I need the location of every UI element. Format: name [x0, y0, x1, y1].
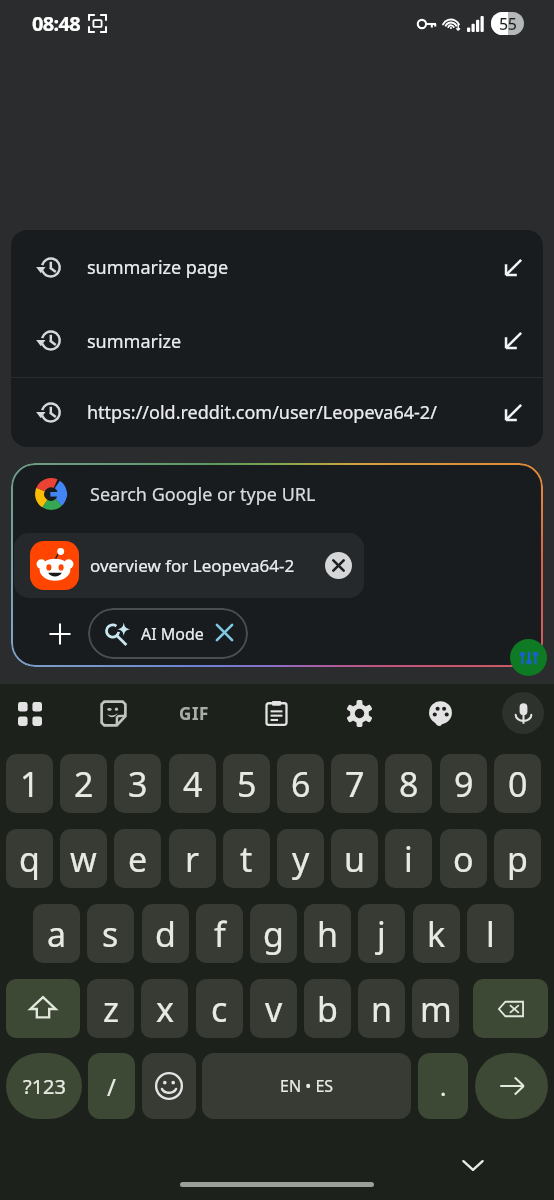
button[interactable]: ?123 — [6, 1053, 82, 1119]
staticText: z — [103, 986, 119, 1032]
button[interactable]: 2 — [60, 754, 107, 813]
button[interactable]: o — [440, 829, 487, 888]
button[interactable]: Hide keyboard — [456, 1148, 490, 1182]
button[interactable]: summarize page — [11, 230, 543, 305]
button[interactable]: c — [196, 979, 243, 1038]
staticText: 6 — [291, 761, 311, 807]
staticText: Search Google or type URL — [90, 482, 316, 507]
staticText: 0 — [508, 761, 528, 807]
staticText: j — [377, 911, 386, 957]
staticText: / — [107, 1070, 116, 1103]
button[interactable]: y — [277, 829, 324, 888]
staticText: f — [214, 911, 226, 957]
button[interactable]: v — [250, 979, 297, 1038]
button[interactable]: f — [196, 904, 243, 963]
staticText: 9 — [454, 761, 474, 807]
button[interactable]: z — [87, 979, 134, 1038]
button[interactable]: / — [88, 1053, 135, 1119]
button[interactable]: Search Google or type URL — [11, 463, 543, 525]
button[interactable]: GIF — [172, 692, 216, 734]
button[interactable]: n — [358, 979, 405, 1038]
button[interactable]: s — [87, 904, 134, 963]
button[interactable]: Emoji — [142, 1053, 196, 1119]
button[interactable]: j — [358, 904, 405, 963]
button[interactable]: 5 — [223, 754, 270, 813]
button[interactable]: 7 — [331, 754, 378, 813]
staticText: b — [317, 986, 338, 1032]
staticText: d — [155, 911, 176, 957]
button[interactable]: g — [250, 904, 297, 963]
button[interactable]: 9 — [440, 754, 487, 813]
staticText: x — [156, 986, 174, 1032]
staticText: r — [185, 836, 200, 882]
button[interactable]: Enter — [475, 1053, 548, 1119]
staticText: a — [47, 911, 67, 957]
button[interactable]: 0 — [494, 754, 541, 813]
button[interactable]: x — [141, 979, 188, 1038]
staticText: n — [371, 986, 393, 1032]
staticText: v — [265, 986, 283, 1032]
staticText: GIF — [179, 702, 210, 725]
staticText: m — [420, 986, 452, 1032]
button[interactable]: overview for Leopeva64-2 — [14, 533, 364, 598]
button[interactable]: i — [385, 829, 432, 888]
staticText: e — [128, 836, 148, 882]
button[interactable]: 3 — [114, 754, 161, 813]
other: Insert suggestion — [501, 401, 525, 425]
button[interactable]: Clipboard — [255, 692, 298, 735]
button[interactable]: summarize — [11, 305, 543, 377]
button[interactable]: b — [304, 979, 351, 1038]
button[interactable]: Tune — [510, 639, 547, 676]
button[interactable]: m — [412, 979, 459, 1038]
button[interactable]: Remove — [325, 552, 352, 579]
button[interactable]: t — [223, 829, 270, 888]
button[interactable]: k — [413, 904, 460, 963]
staticText: 2 — [74, 761, 94, 807]
staticText: 7 — [345, 761, 365, 807]
staticText: summarize page — [87, 255, 493, 280]
button[interactable]: 6 — [277, 754, 324, 813]
button[interactable]: 8 — [385, 754, 432, 813]
button[interactable]: Add — [41, 615, 79, 653]
button[interactable]: https://old.reddit.com/user/Leopeva64-2/ — [11, 378, 543, 447]
button[interactable]: d — [142, 904, 189, 963]
button[interactable]: 4 — [169, 754, 216, 813]
button[interactable]: Voice input — [502, 692, 544, 734]
button[interactable]: l — [467, 904, 514, 963]
staticText: w — [70, 836, 97, 882]
staticText: summarize — [87, 329, 493, 354]
button[interactable]: p — [494, 829, 541, 888]
button[interactable]: u — [331, 829, 378, 888]
button[interactable]: Shift — [6, 979, 80, 1038]
staticText: overview for Leopeva64-2 — [90, 554, 295, 577]
staticText: 8 — [399, 761, 419, 807]
staticText: k — [427, 911, 446, 957]
button[interactable]: w — [60, 829, 107, 888]
staticText: q — [19, 836, 40, 882]
button[interactable]: Themes — [420, 693, 462, 735]
button[interactable]: r — [169, 829, 216, 888]
staticText: . — [440, 1070, 447, 1103]
staticText: c — [211, 986, 228, 1032]
button[interactable]: Apps — [10, 694, 50, 734]
button[interactable]: AI Mode — [88, 608, 248, 659]
button[interactable]: h — [304, 904, 351, 963]
staticText: EN • ES — [280, 1075, 334, 1097]
staticText: s — [102, 911, 119, 957]
button[interactable]: EN • ES — [202, 1053, 411, 1119]
button[interactable]: 1 — [6, 754, 53, 813]
button[interactable]: . — [418, 1053, 468, 1119]
staticText: l — [486, 911, 495, 957]
button[interactable]: q — [6, 829, 53, 888]
staticText: 1 — [20, 761, 40, 807]
staticText: h — [317, 911, 339, 957]
button[interactable]: e — [114, 829, 161, 888]
button[interactable]: Stickers — [92, 692, 135, 735]
button[interactable]: a — [33, 904, 80, 963]
button[interactable]: Backspace — [473, 979, 548, 1038]
staticText: g — [263, 911, 284, 957]
staticText: ?123 — [23, 1073, 66, 1100]
button[interactable]: Settings — [338, 692, 381, 735]
staticText: 3 — [128, 761, 148, 807]
staticText: 4 — [183, 761, 203, 807]
